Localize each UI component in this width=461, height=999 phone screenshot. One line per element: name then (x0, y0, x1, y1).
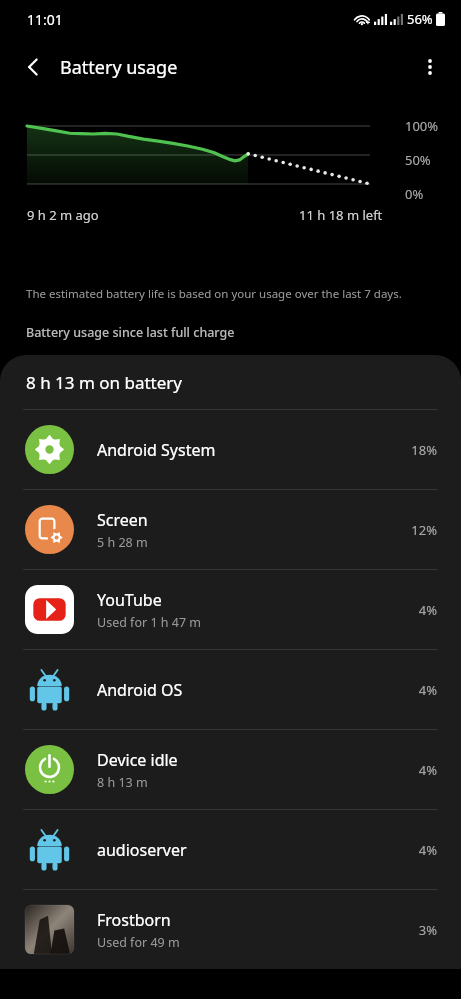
button[interactable]: Device idle (0, 730, 461, 809)
staticText: Device idle (97, 749, 178, 771)
staticText: 100% (405, 117, 439, 135)
staticText: 4% (418, 841, 437, 859)
staticText: 4% (418, 761, 437, 779)
button[interactable]: YouTube (0, 570, 461, 649)
staticText: 4% (418, 681, 437, 699)
staticText: 8 h 13 m on battery (26, 371, 183, 394)
button[interactable]: audioserver (0, 810, 461, 889)
staticText: Android System (97, 439, 216, 461)
button[interactable]: Frostborn (0, 890, 461, 969)
staticText: 11:01 (27, 10, 63, 29)
staticText: audioserver (97, 839, 187, 861)
staticText: 5 h 28 m (97, 534, 148, 551)
staticText: 8 h 13 m (97, 774, 148, 791)
staticText: 56% (407, 10, 433, 28)
staticText: Battery usage (60, 55, 178, 80)
button[interactable]: Android OS (0, 650, 461, 729)
staticText: 18% (411, 441, 437, 459)
button[interactable]: Android System (0, 410, 461, 489)
staticText: Used for 49 m (97, 934, 180, 951)
staticText: Frostborn (97, 909, 171, 931)
button[interactable]: Screen (0, 490, 461, 569)
staticText: Used for 1 h 47 m (97, 614, 202, 631)
staticText: 50% (405, 151, 431, 169)
staticText: Screen (97, 509, 148, 531)
button[interactable]: Back (12, 45, 56, 89)
staticText: 3% (418, 921, 437, 939)
staticText: YouTube (97, 589, 162, 611)
staticText: 12% (411, 521, 437, 539)
button[interactable]: More options (407, 44, 453, 90)
staticText: 9 h 2 m ago (27, 206, 99, 224)
staticText: 0% (405, 185, 424, 203)
staticText: The estimated battery life is based on y… (26, 286, 402, 302)
staticText: Battery usage since last full charge (26, 324, 235, 341)
staticText: Android OS (97, 679, 183, 701)
staticText: 11 h 18 m left (299, 206, 383, 224)
staticText: 4% (418, 601, 437, 619)
